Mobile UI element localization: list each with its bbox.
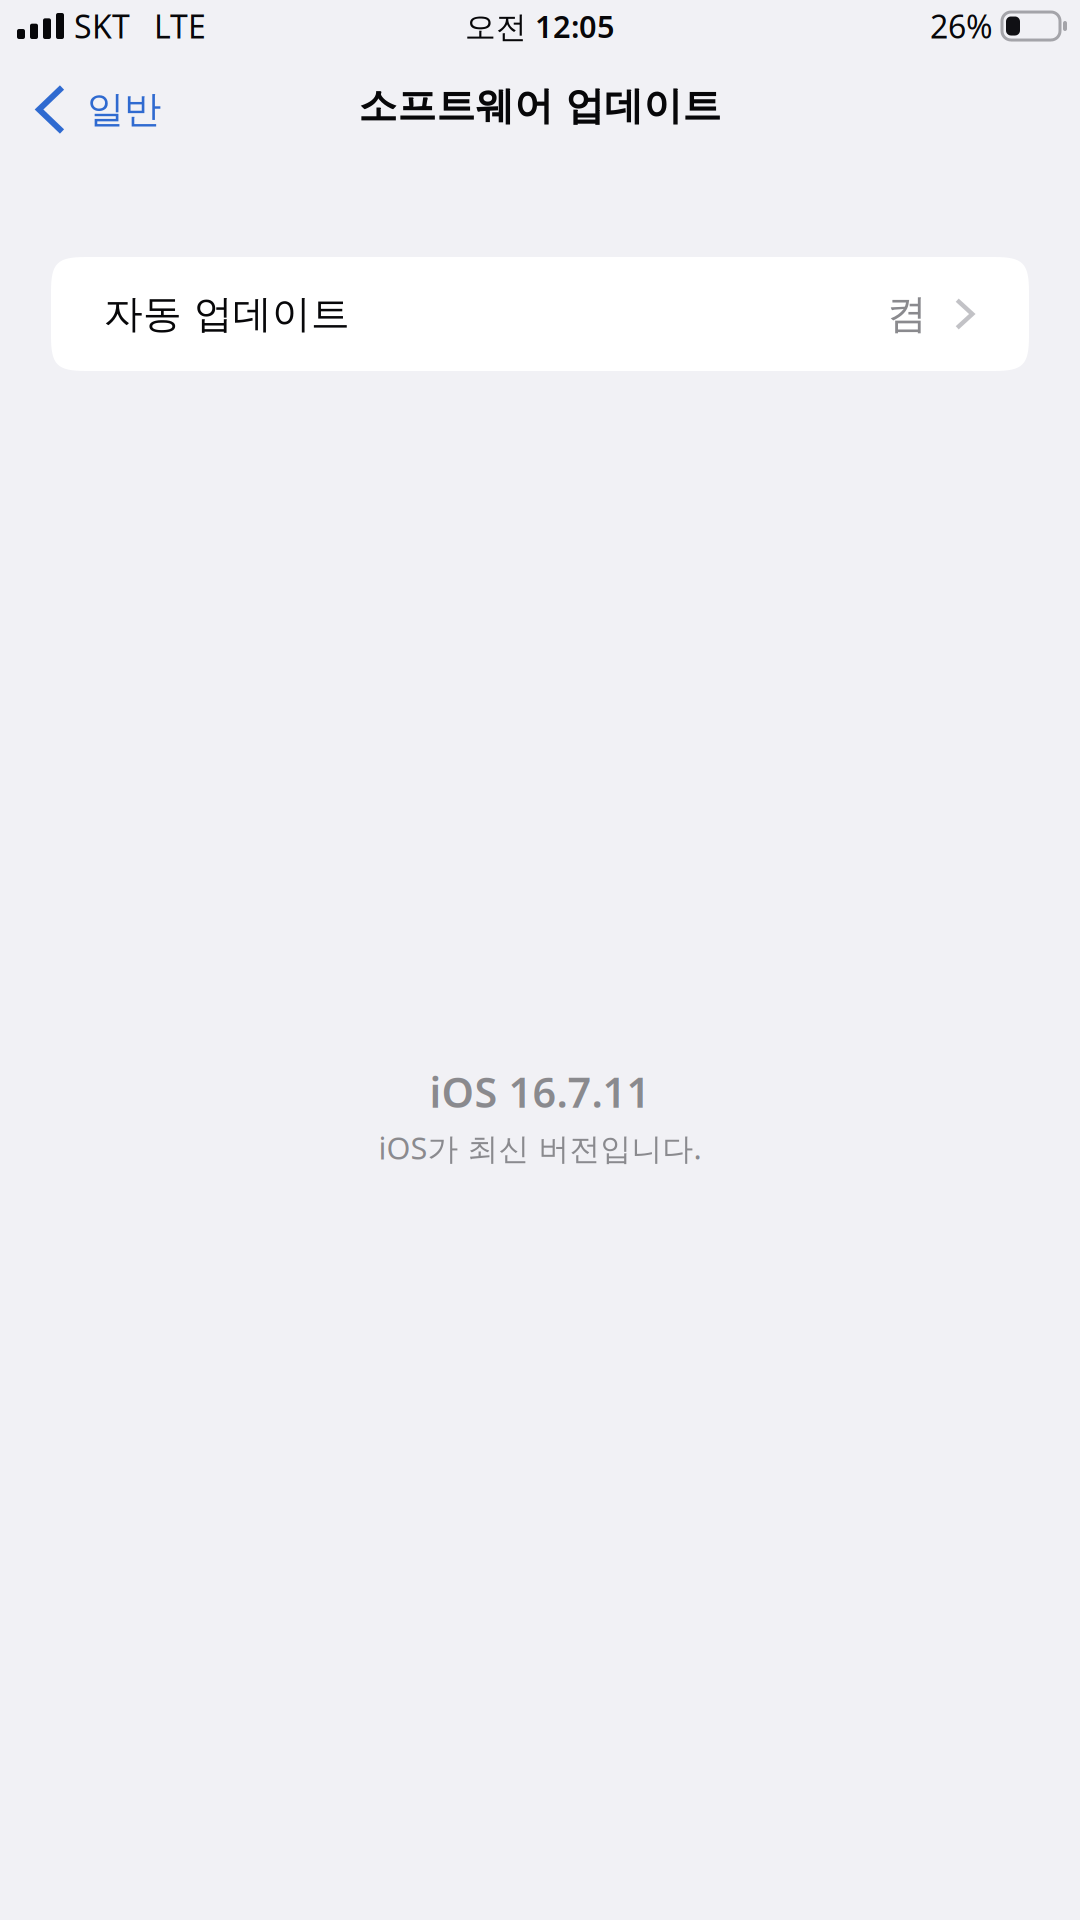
staticText: 26% (930, 5, 993, 47)
staticText: iOS 16.7.11 (429, 1064, 650, 1119)
button[interactable]: 일반 (뒤로) (0, 62, 181, 154)
button[interactable]: 자동 업데이트 (51, 257, 1029, 371)
staticText: 켬 (887, 289, 927, 338)
staticText: iOS가 최신 버전입니다. (378, 1127, 701, 1168)
staticText: SKT (74, 5, 130, 47)
staticText: 소프트웨어 업데이트 (358, 82, 721, 130)
staticText: 자동 업데이트 (104, 290, 350, 338)
staticText: 오전 12:05 (465, 6, 615, 46)
staticText: LTE (154, 5, 206, 47)
staticText: 일반 (87, 87, 161, 132)
